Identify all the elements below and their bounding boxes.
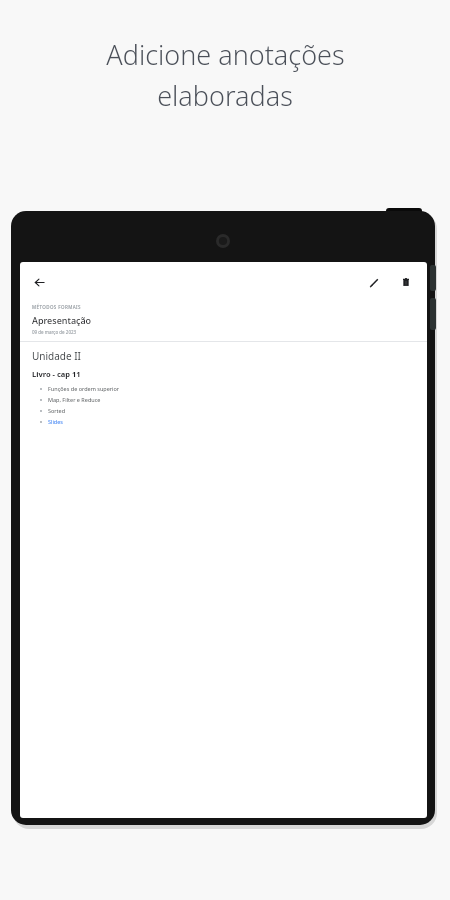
staticText: Map, Filter e Reduce — [48, 396, 101, 403]
staticText: MÉTODOS FORMAIS — [32, 304, 81, 310]
button[interactable]: Delete — [395, 271, 417, 293]
staticText: Sorted — [48, 407, 66, 414]
button[interactable]: Back — [28, 271, 50, 293]
staticText: Adicione anotações — [106, 36, 345, 73]
staticText: Slides — [48, 418, 63, 425]
staticText: Funções de ordem superior — [48, 385, 120, 392]
staticText: Apresentação — [32, 314, 92, 326]
staticText: Unidade II — [32, 349, 81, 363]
staticText: 09 de março de 2023 — [32, 329, 77, 335]
staticText: elaboradas — [157, 77, 293, 114]
button[interactable]: Edit — [363, 271, 385, 293]
staticText: Livro - cap 11 — [32, 369, 81, 379]
